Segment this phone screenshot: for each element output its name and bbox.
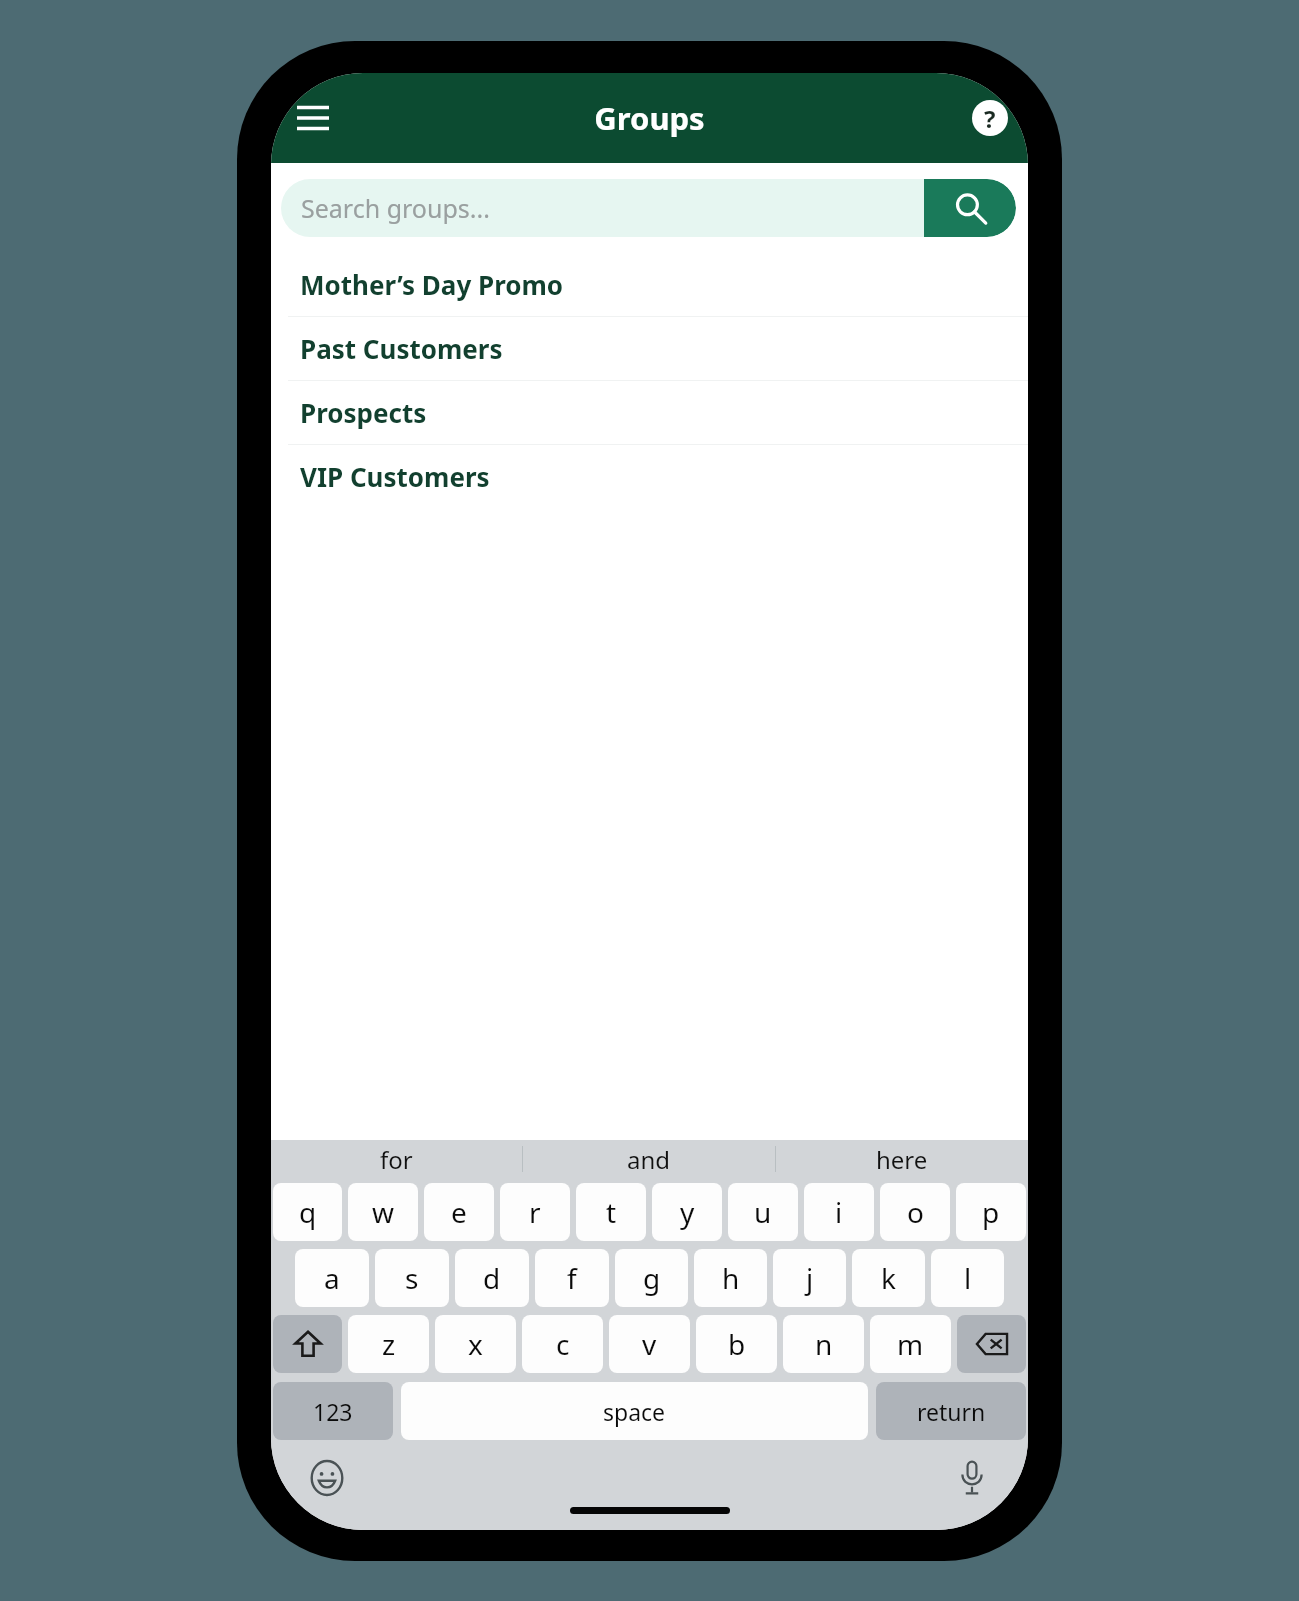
button[interactable]: j — [773, 1249, 846, 1307]
staticText: d — [483, 1259, 501, 1297]
staticText: x — [468, 1325, 483, 1363]
button[interactable]: q — [273, 1183, 342, 1241]
staticText: i — [835, 1193, 843, 1231]
staticText: o — [907, 1193, 924, 1231]
staticText: Past Customers — [300, 331, 503, 366]
staticText: VIP Customers — [300, 459, 490, 494]
button[interactable]: d — [455, 1249, 529, 1307]
button[interactable]: Voice input — [948, 1454, 996, 1502]
button[interactable]: Emoji — [303, 1454, 351, 1502]
staticText: q — [299, 1193, 317, 1231]
button[interactable]: e — [424, 1183, 494, 1241]
staticText: v — [642, 1325, 657, 1363]
staticText: w — [372, 1193, 395, 1231]
button[interactable]: s — [375, 1249, 449, 1307]
staticText: b — [728, 1325, 746, 1363]
staticText: for — [380, 1143, 413, 1176]
staticText: r — [529, 1193, 541, 1231]
staticText: e — [451, 1193, 467, 1231]
staticText: f — [567, 1259, 577, 1297]
button[interactable]: h — [694, 1249, 767, 1307]
staticText: t — [606, 1193, 617, 1231]
button[interactable]: w — [348, 1183, 418, 1241]
staticText: n — [815, 1325, 833, 1363]
button[interactable]: k — [852, 1249, 925, 1307]
button[interactable]: Menu — [287, 92, 339, 144]
staticText: Prospects — [300, 395, 427, 430]
staticText: s — [405, 1259, 419, 1297]
staticText: u — [754, 1193, 772, 1231]
button[interactable]: i — [804, 1183, 874, 1241]
button[interactable]: Search — [924, 179, 1016, 237]
button[interactable]: Backspace — [957, 1315, 1026, 1373]
button[interactable]: VIP Customers — [271, 445, 1028, 508]
button[interactable]: 123 — [273, 1382, 393, 1440]
button[interactable]: a — [295, 1249, 369, 1307]
button[interactable]: n — [783, 1315, 864, 1373]
button[interactable]: l — [931, 1249, 1004, 1307]
button[interactable]: Mother’s Day Promo — [271, 253, 1028, 316]
button[interactable]: u — [728, 1183, 798, 1241]
staticText: g — [643, 1259, 661, 1297]
staticText: ? — [984, 102, 996, 135]
staticText: a — [324, 1259, 340, 1297]
staticText: and — [627, 1143, 671, 1176]
button[interactable]: Past Customers — [271, 317, 1028, 380]
button[interactable]: return — [876, 1382, 1026, 1440]
button[interactable]: Shift — [273, 1315, 342, 1373]
button[interactable]: space — [401, 1382, 868, 1440]
button[interactable]: p — [956, 1183, 1026, 1241]
staticText: p — [982, 1193, 1000, 1231]
staticText: here — [876, 1143, 928, 1176]
button[interactable]: g — [615, 1249, 688, 1307]
staticText: m — [897, 1325, 924, 1363]
button[interactable]: c — [522, 1315, 603, 1373]
staticText: k — [881, 1259, 896, 1297]
button[interactable]: b — [696, 1315, 777, 1373]
staticText: y — [680, 1193, 695, 1231]
button[interactable]: t — [576, 1183, 646, 1241]
staticText: c — [556, 1325, 570, 1363]
button[interactable]: and — [523, 1140, 775, 1178]
button[interactable]: Search groups... — [281, 179, 924, 237]
button[interactable]: Prospects — [271, 381, 1028, 444]
button[interactable]: here — [776, 1140, 1028, 1178]
staticText: z — [382, 1325, 396, 1363]
button[interactable]: f — [535, 1249, 609, 1307]
staticText: l — [964, 1259, 972, 1297]
staticText: h — [722, 1259, 740, 1297]
button[interactable]: v — [609, 1315, 690, 1373]
button[interactable]: m — [870, 1315, 951, 1373]
button[interactable]: for — [271, 1140, 522, 1178]
staticText: return — [917, 1396, 986, 1427]
button[interactable]: z — [348, 1315, 429, 1373]
staticText: Search groups... — [301, 191, 490, 225]
staticText: space — [603, 1396, 666, 1427]
staticText: Groups — [594, 97, 705, 139]
staticText: Mother’s Day Promo — [300, 267, 564, 302]
staticText: 123 — [313, 1396, 353, 1427]
button[interactable]: r — [500, 1183, 570, 1241]
button[interactable]: y — [652, 1183, 722, 1241]
button[interactable]: o — [880, 1183, 950, 1241]
button[interactable]: x — [435, 1315, 516, 1373]
staticText: j — [806, 1259, 814, 1297]
button[interactable]: Help — [966, 94, 1014, 142]
